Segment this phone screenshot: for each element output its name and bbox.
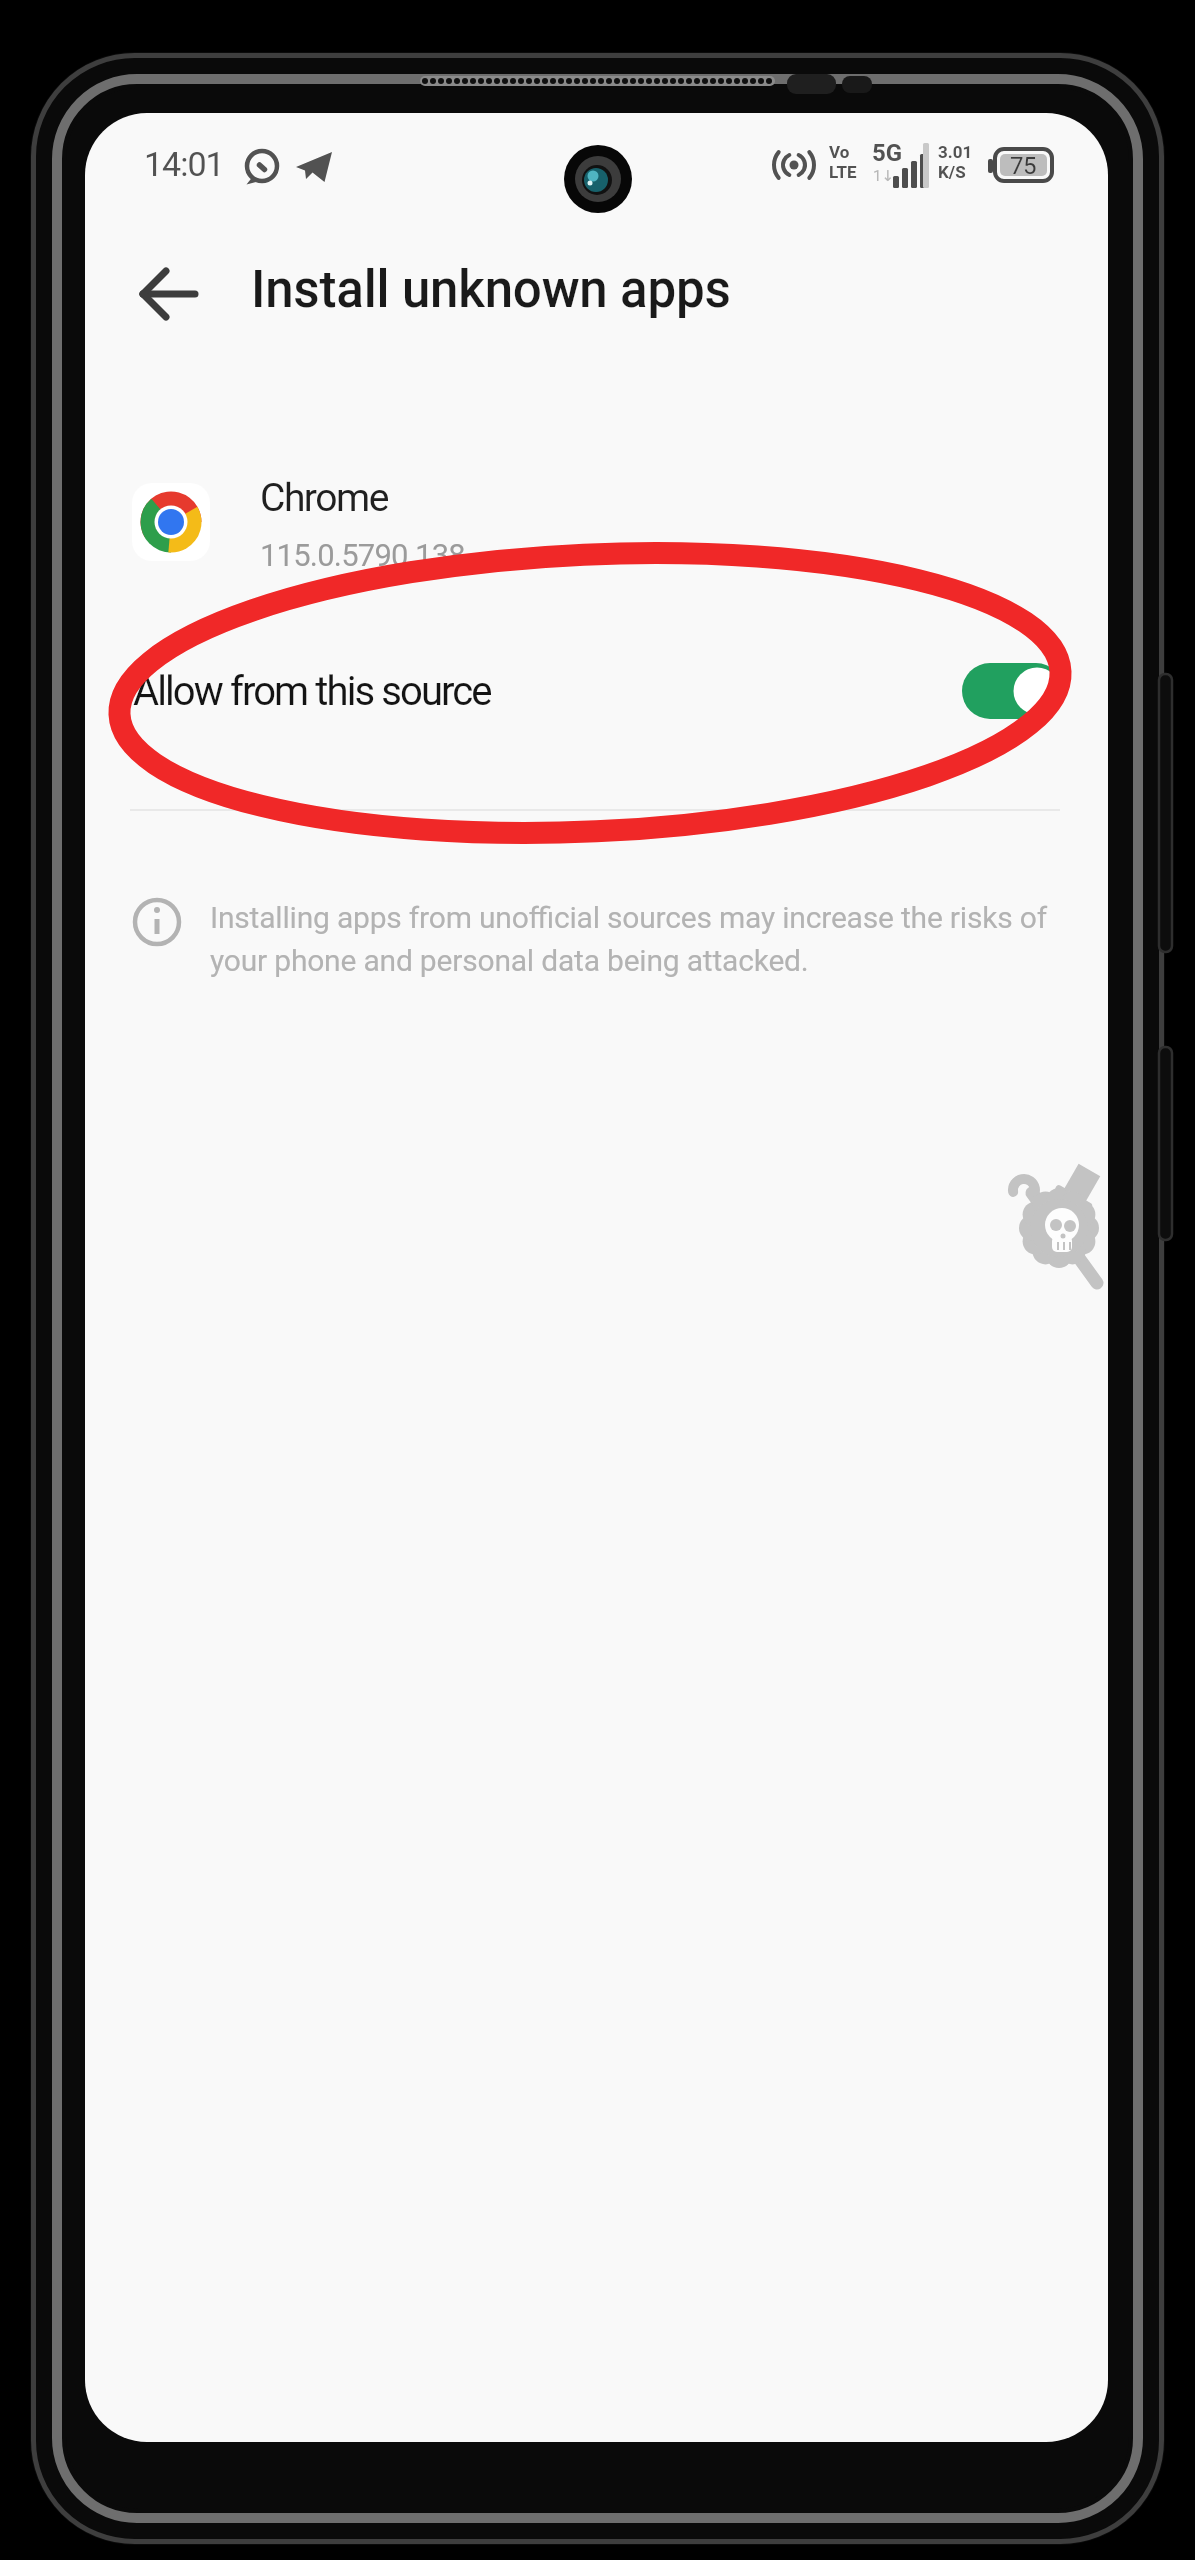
button[interactable] [115,633,1075,753]
staticText: Allow from this source [133,668,491,715]
staticText: 3.01 K/S [938,142,973,182]
staticText: Install unknown apps [251,260,731,320]
staticText: Vo LTE [829,142,857,182]
staticText: 14:01 [144,144,224,184]
staticText: Chrome [260,475,388,521]
staticText: 115.0.5790.138 [260,537,465,573]
staticText: 75 [1010,152,1036,180]
button[interactable] [115,468,1075,598]
staticText: 1↓ [873,167,894,185]
button[interactable] [127,257,207,331]
staticText: Installing apps from unofficial sources … [210,900,1047,978]
button[interactable] [962,663,1064,719]
staticText: 5G [872,139,903,167]
